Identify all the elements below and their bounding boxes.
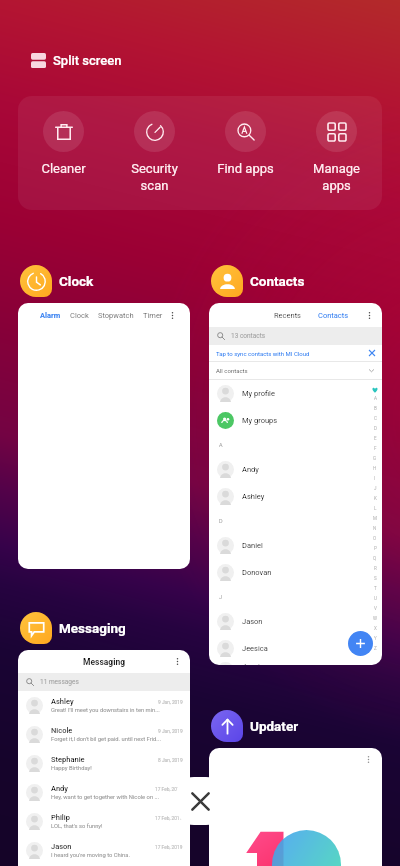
staticText: I xyxy=(374,476,376,481)
button[interactable]: Ashley xyxy=(26,691,183,720)
staticText: T xyxy=(374,586,377,591)
button[interactable]: Messaging xyxy=(18,650,190,866)
staticText: K xyxy=(374,496,377,501)
button[interactable] xyxy=(209,748,382,866)
staticText: Alarm xyxy=(40,311,61,320)
staticText: J xyxy=(374,486,377,491)
button[interactable]: Jeesica xyxy=(217,635,382,662)
staticText: D xyxy=(374,426,377,431)
staticText: Recents xyxy=(274,311,301,320)
staticText: H xyxy=(373,466,377,471)
staticText: 9 Jan, 2019 xyxy=(158,729,183,735)
button[interactable]: Daniel xyxy=(217,532,382,559)
staticText: A xyxy=(374,396,377,401)
staticText: Split screen xyxy=(53,53,122,68)
staticText: J xyxy=(219,594,223,600)
staticText: Security scan xyxy=(131,161,178,194)
button[interactable]: My profile xyxy=(217,380,382,407)
staticText: I heard you're moving to China. xyxy=(51,852,130,859)
staticText: Contacts xyxy=(318,311,349,320)
staticText: My groups xyxy=(242,416,278,425)
staticText: 17 Feb, 2019 xyxy=(155,787,183,793)
staticText: X xyxy=(374,626,377,631)
staticText: P xyxy=(374,546,377,551)
button[interactable]: Ashley xyxy=(217,483,382,510)
staticText: 17 Feb, 2019 xyxy=(155,816,183,822)
staticText: L xyxy=(374,506,377,511)
staticText: Tap to sync contacts with MI Cloud xyxy=(216,350,310,357)
staticText: Donovan xyxy=(242,568,272,577)
staticText: Jason xyxy=(51,842,72,851)
staticText: Jeesica xyxy=(242,662,268,665)
staticText: Stopwatch xyxy=(98,311,134,320)
staticText: F xyxy=(374,446,377,451)
staticText: My profile xyxy=(242,389,275,398)
staticText: LOL, that's so funny! xyxy=(51,823,103,830)
staticText: C xyxy=(374,416,377,421)
button[interactable]: Add contact xyxy=(348,631,373,656)
staticText: Timer xyxy=(143,311,163,320)
button[interactable]: Tap to sync contacts with MI Cloud xyxy=(216,345,375,361)
staticText: 9 Jan, 2019 xyxy=(158,700,183,706)
staticText: Clock xyxy=(70,311,89,320)
button[interactable]: Alarm xyxy=(18,303,190,569)
staticText: 13 contacts xyxy=(231,332,266,340)
staticText: 8 Jan, 2019 xyxy=(158,758,183,764)
staticText: D xyxy=(219,518,223,524)
staticText: Andy xyxy=(242,465,259,474)
staticText: Ashley xyxy=(51,697,74,706)
staticText: Stephanie xyxy=(51,755,85,764)
button[interactable]: Close all xyxy=(176,777,224,825)
staticText: Clock xyxy=(59,273,94,289)
staticText: S xyxy=(374,576,377,581)
button[interactable]: All contacts xyxy=(216,362,375,379)
staticText: Find apps xyxy=(217,161,274,176)
staticText: U xyxy=(374,596,377,601)
button[interactable]: Split screen xyxy=(31,50,122,70)
button[interactable]: Donovan xyxy=(217,559,382,586)
button[interactable]: Jason xyxy=(26,836,183,865)
button[interactable]: Nicole xyxy=(26,720,183,749)
button[interactable]: My groups xyxy=(217,407,382,434)
staticText: B xyxy=(374,406,377,411)
staticText: Ashley xyxy=(242,492,265,501)
staticText: 11 messages xyxy=(40,678,79,686)
staticText: Y xyxy=(374,636,377,641)
staticText: 17 Feb, 2019 xyxy=(155,845,183,851)
staticText: Q xyxy=(373,556,377,561)
staticText: Philip xyxy=(51,813,70,822)
staticText: V xyxy=(374,606,377,611)
staticText: Messaging xyxy=(83,657,126,667)
staticText: W xyxy=(373,616,377,621)
staticText: Z xyxy=(374,646,377,651)
staticText: Updater xyxy=(250,718,299,734)
button[interactable]: Recents xyxy=(209,303,382,665)
staticText: O xyxy=(373,536,377,541)
staticText: Andy xyxy=(51,784,68,793)
button[interactable]: Jeesica xyxy=(217,662,382,665)
staticText: Forget it,I don't bil get paid. until ne… xyxy=(51,736,161,743)
button[interactable]: Security scan xyxy=(109,111,200,194)
staticText: G xyxy=(373,456,377,461)
staticText: Messaging xyxy=(59,620,126,636)
staticText: Great! I'll meet you downstairs in ten m… xyxy=(51,707,160,714)
button[interactable]: Stephanie xyxy=(26,749,183,778)
button[interactable]: Cleaner xyxy=(18,111,109,176)
button[interactable]: Andy xyxy=(217,456,382,483)
staticText: M xyxy=(373,516,377,521)
staticText: Cleaner xyxy=(41,161,86,176)
staticText: Jason xyxy=(242,617,263,626)
button[interactable]: Andy xyxy=(26,778,183,807)
staticText: N xyxy=(373,526,377,531)
staticText: Happy Birthday! xyxy=(51,765,92,772)
staticText: Manage apps xyxy=(313,161,360,194)
staticText: Nicole xyxy=(51,726,73,735)
button[interactable]: Manage apps xyxy=(291,111,382,194)
staticText: E xyxy=(374,436,377,441)
staticText: Hey, want to get together with Nicole on… xyxy=(51,794,160,801)
staticText: R xyxy=(374,566,377,571)
button[interactable]: Philip xyxy=(26,807,183,836)
button[interactable]: Jason xyxy=(217,608,382,635)
staticText: A xyxy=(219,442,223,448)
button[interactable]: Find apps xyxy=(200,111,291,176)
